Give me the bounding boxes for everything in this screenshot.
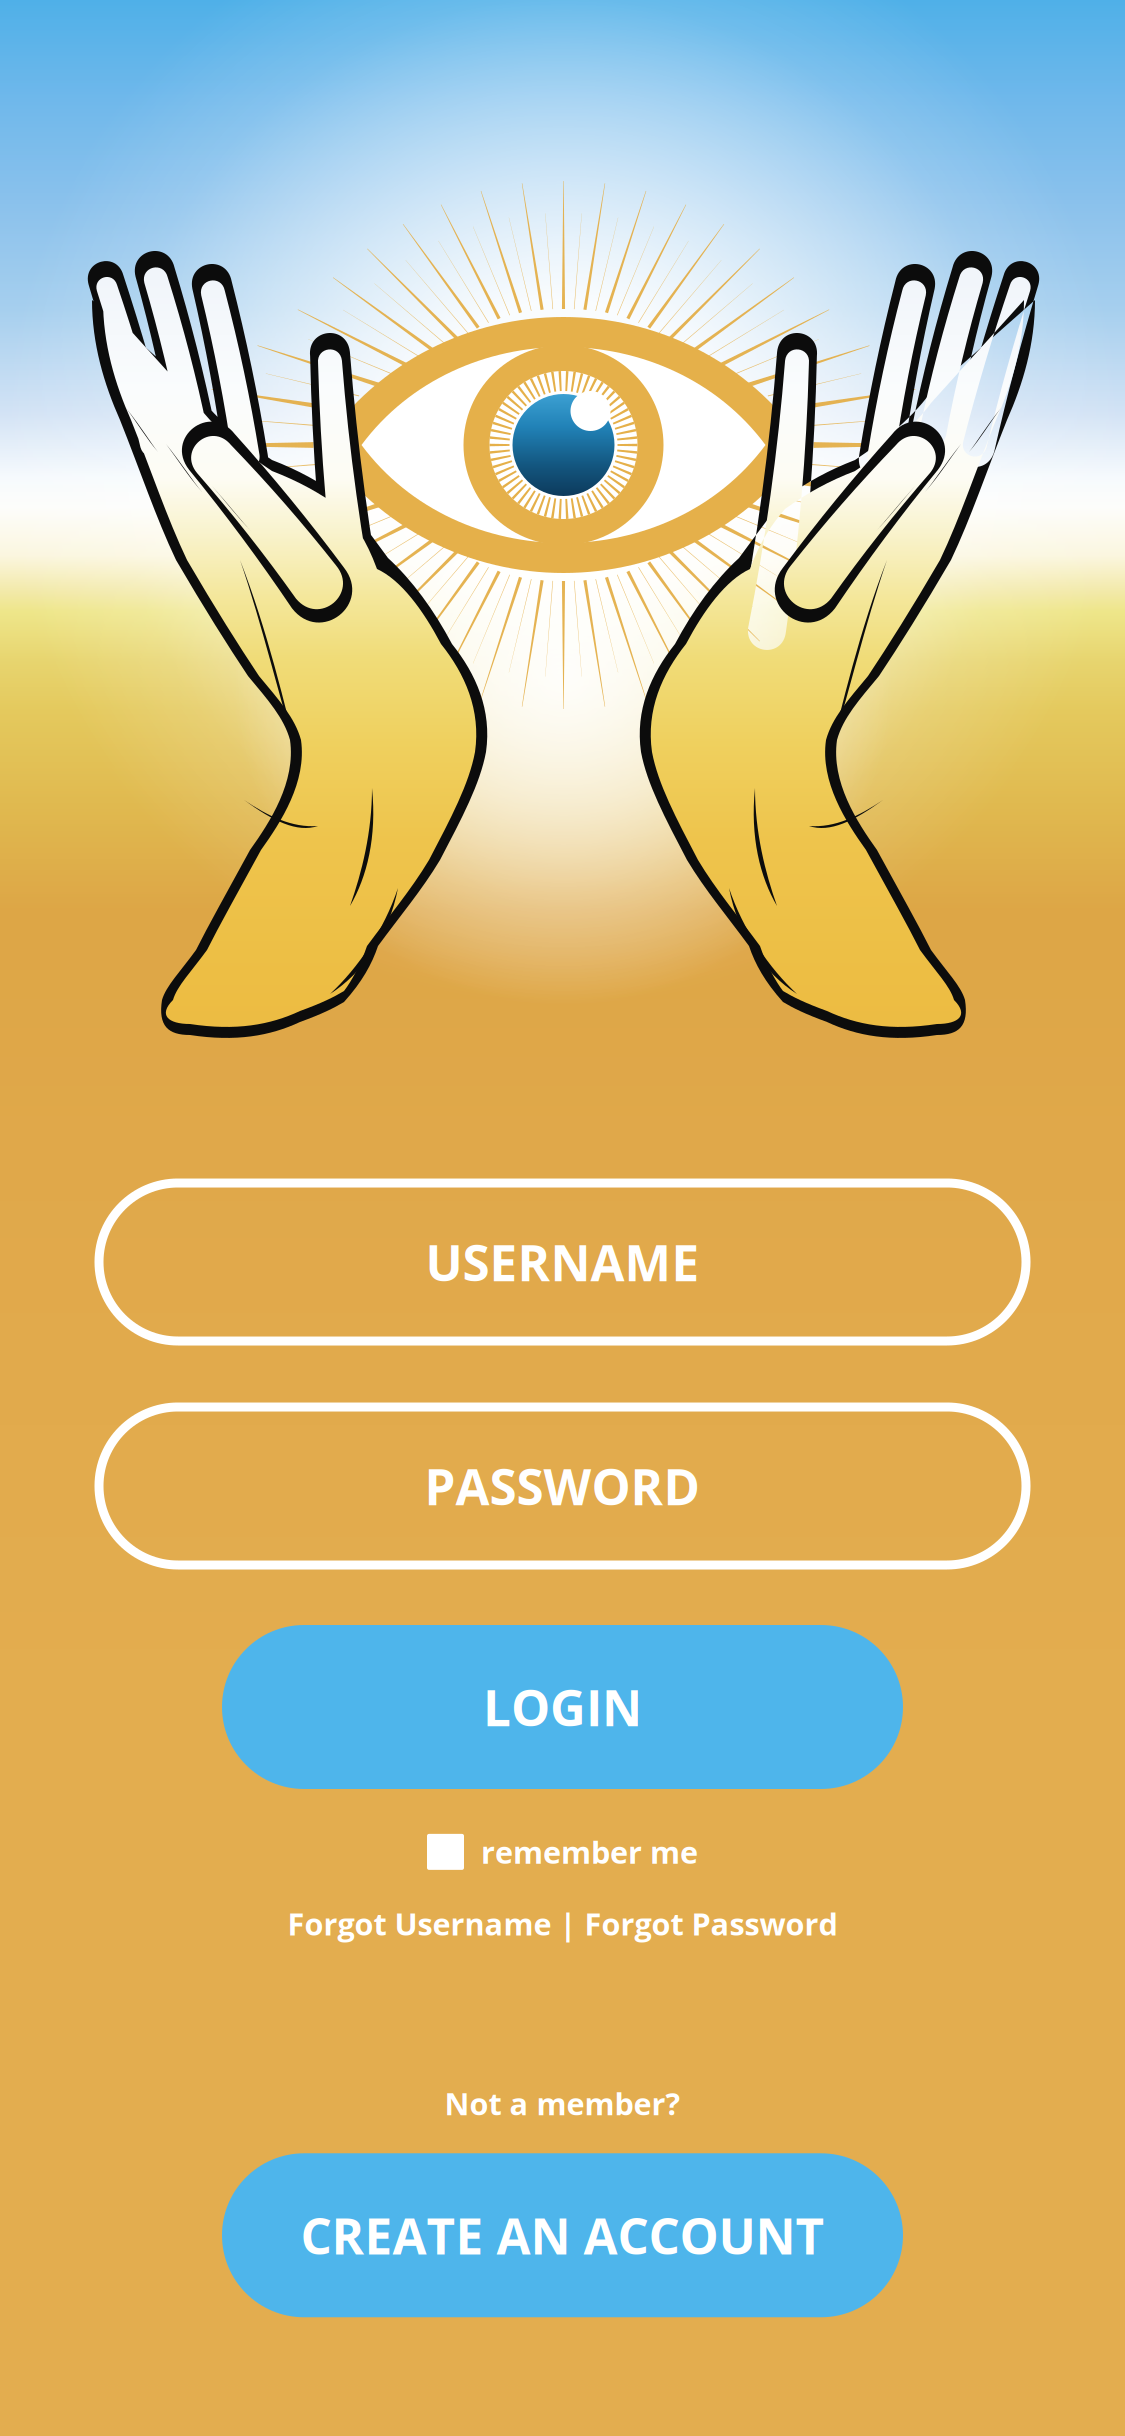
button[interactable]: remember me (427, 1831, 698, 1873)
staticText: PASSWORD (424, 1452, 700, 1520)
staticText: LOGIN (483, 1673, 642, 1741)
button[interactable]: PASSWORD (99, 1407, 1026, 1565)
button[interactable]: CREATE AN ACCOUNT (222, 2153, 903, 2317)
button[interactable]: USERNAME (99, 1183, 1026, 1341)
button[interactable]: Forgot Username | Forgot Password (287, 1903, 837, 1945)
button[interactable]: LOGIN (222, 1625, 903, 1789)
staticText: CREATE AN ACCOUNT (300, 2202, 824, 2269)
staticText: Not a member? (444, 2082, 680, 2124)
staticText: USERNAME (425, 1228, 699, 1296)
staticText: Forgot Username | Forgot Password (287, 1903, 837, 1945)
staticText: remember me (481, 1831, 698, 1873)
